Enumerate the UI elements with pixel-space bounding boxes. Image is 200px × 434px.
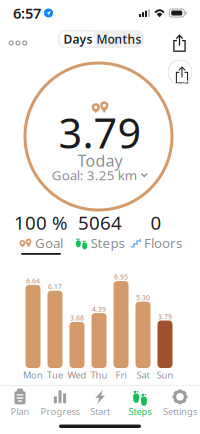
- staticText: 5.30: [136, 293, 150, 302]
- staticText: Goal: 3.25 km: [52, 166, 137, 184]
- button[interactable]: Months: [96, 31, 142, 46]
- button[interactable]: 5064: [65, 208, 135, 260]
- staticText: Steps: [128, 405, 151, 418]
- staticText: 6:57: [13, 3, 41, 23]
- staticText: Steps: [90, 234, 124, 252]
- button[interactable]: Goal: 3.25 km: [0, 165, 200, 185]
- staticText: Sun: [156, 369, 173, 381]
- staticText: 4.39: [92, 305, 106, 313]
- staticText: 6.64: [26, 276, 40, 285]
- button[interactable]: Steps: [120, 388, 160, 418]
- staticText: Days: [63, 31, 92, 47]
- staticText: Progress: [40, 405, 79, 418]
- button[interactable]: 4.39: [88, 266, 110, 384]
- staticText: Tue: [47, 369, 63, 381]
- staticText: 3.79: [58, 105, 141, 160]
- staticText: Sat: [136, 369, 149, 381]
- button[interactable]: Progress: [40, 388, 80, 418]
- staticText: 100 %: [14, 210, 68, 235]
- staticText: 5064: [78, 210, 122, 235]
- staticText: Months: [96, 31, 141, 47]
- button[interactable]: Days: [60, 31, 96, 46]
- button[interactable]: Export data: [168, 60, 192, 84]
- button[interactable]: Plan: [0, 388, 40, 418]
- button[interactable]: More options: [0, 28, 36, 58]
- button[interactable]: 100 %: [6, 208, 76, 260]
- staticText: Settings: [163, 405, 197, 418]
- staticText: Thu: [90, 369, 107, 381]
- staticText: Fri: [115, 369, 126, 381]
- button[interactable]: 6.64: [22, 266, 44, 384]
- button[interactable]: Start: [80, 388, 120, 418]
- button[interactable]: Settings: [160, 388, 200, 418]
- button[interactable]: 0: [121, 208, 191, 260]
- staticText: Mon: [23, 369, 43, 381]
- button[interactable]: 5.30: [132, 266, 154, 384]
- button[interactable]: 3.79: [154, 266, 176, 384]
- staticText: Plan: [10, 405, 29, 418]
- staticText: 6.17: [48, 282, 62, 291]
- staticText: Today: [77, 150, 122, 171]
- staticText: 3.68: [70, 313, 84, 322]
- staticText: 0: [150, 210, 161, 235]
- button[interactable]: Share: [164, 28, 196, 58]
- staticText: Wed: [67, 369, 86, 381]
- staticText: 6.95: [114, 273, 128, 281]
- button[interactable]: 6.95: [110, 266, 132, 384]
- staticText: Floors: [144, 234, 182, 252]
- staticText: Start: [90, 405, 110, 418]
- staticText: 3.79: [158, 312, 172, 321]
- staticText: Goal: [35, 234, 63, 252]
- button[interactable]: 6.17: [44, 266, 66, 384]
- button[interactable]: 3.68: [66, 266, 88, 384]
